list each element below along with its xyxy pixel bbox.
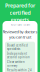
staticText: Results within 24 hours bbox=[7, 68, 32, 72]
staticText: Prepared for bbox=[5, 2, 35, 9]
staticText: Board certified specialists bbox=[7, 44, 28, 51]
staticText: Clear written summary bbox=[7, 60, 25, 67]
staticText: experts bbox=[10, 16, 29, 23]
staticText: certified bbox=[9, 9, 30, 16]
staticText: Your care team bbox=[10, 23, 29, 26]
staticText: Reviewed by doctors bbox=[2, 29, 37, 34]
staticText: Independent second opinion bbox=[7, 52, 30, 59]
staticText: you can trust bbox=[9, 34, 31, 40]
